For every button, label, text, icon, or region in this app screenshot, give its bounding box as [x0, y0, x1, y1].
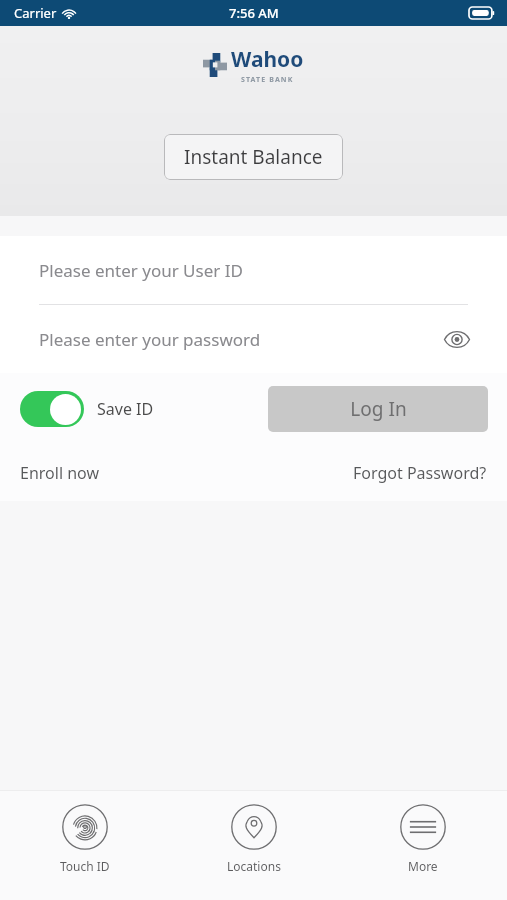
staticText: Wahoo: [231, 45, 304, 74]
staticText: Please enter your password: [39, 328, 261, 351]
staticText: Enroll now: [20, 462, 99, 484]
button[interactable]: Forgot Password?: [353, 462, 487, 484]
staticText: 7:56 AM: [229, 4, 279, 22]
button[interactable]: Show password: [437, 319, 477, 359]
staticText: Save ID: [97, 398, 154, 420]
button[interactable]: Locations: [169, 791, 338, 900]
button[interactable]: Enroll now: [20, 462, 99, 484]
staticText: Touch ID: [60, 858, 110, 874]
staticText: Instant Balance: [184, 144, 323, 170]
button[interactable]: Touch ID: [0, 791, 169, 900]
button[interactable]: Instant Balance: [164, 134, 343, 180]
staticText: STATE BANK: [241, 75, 294, 85]
staticText: Locations: [227, 858, 281, 874]
staticText: Please enter your User ID: [39, 259, 243, 282]
button[interactable]: Log In: [268, 386, 488, 432]
button[interactable]: Please enter your User ID: [0, 236, 507, 304]
staticText: More: [408, 858, 438, 874]
staticText: Log In: [350, 396, 407, 422]
staticText: Carrier: [14, 4, 57, 22]
button[interactable]: More: [338, 791, 507, 900]
staticText: Forgot Password?: [353, 462, 487, 484]
button[interactable]: Please enter your password: [0, 305, 507, 373]
button[interactable]: Save ID: [20, 391, 154, 427]
